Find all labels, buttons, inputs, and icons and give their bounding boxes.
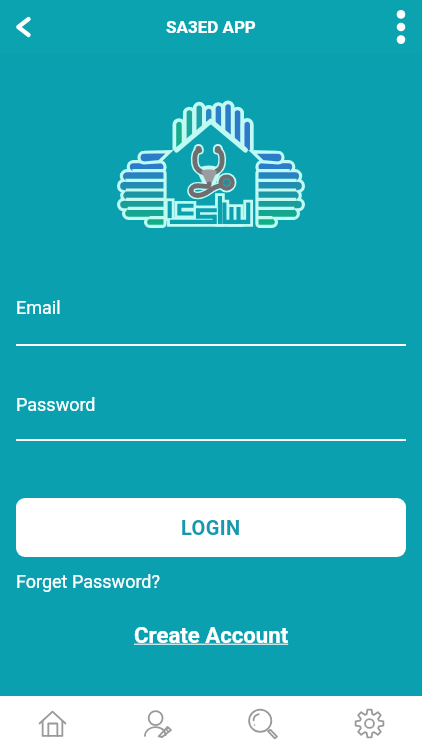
button[interactable]: Forget Password? bbox=[16, 571, 160, 592]
button[interactable]: Settings bbox=[316, 696, 422, 750]
button[interactable]: LOGIN bbox=[16, 498, 406, 557]
staticText: LOGIN bbox=[181, 516, 241, 539]
button[interactable]: Back bbox=[0, 0, 46, 54]
button[interactable]: Edit profile bbox=[105, 696, 210, 750]
staticText: Create Account bbox=[134, 622, 289, 648]
button[interactable]: Create Account bbox=[134, 622, 289, 648]
staticText: SA3ED APP bbox=[166, 17, 256, 37]
button[interactable]: Home bbox=[0, 696, 105, 750]
staticText: Password bbox=[16, 394, 96, 415]
staticText: Forget Password? bbox=[16, 571, 160, 592]
button[interactable]: More options bbox=[380, 0, 422, 54]
staticText: Email bbox=[16, 297, 61, 318]
button[interactable]: Search bbox=[210, 696, 316, 750]
